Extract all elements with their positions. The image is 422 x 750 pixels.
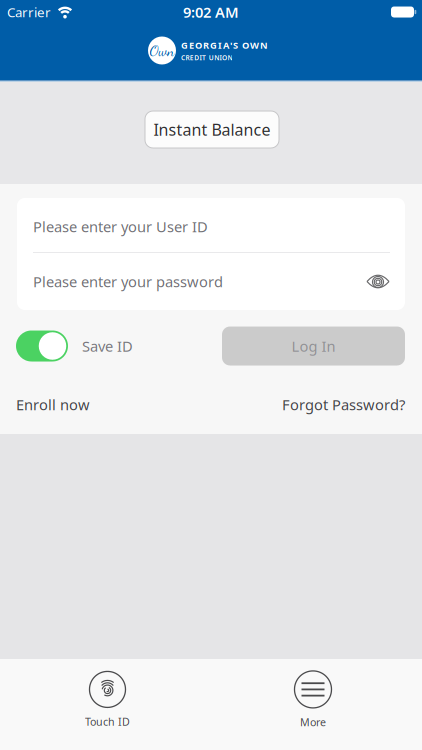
staticText: Save ID <box>82 336 133 356</box>
button[interactable]: Show password <box>366 273 390 289</box>
staticText: Please enter your password <box>33 272 223 291</box>
staticText: Own <box>149 42 174 59</box>
staticText: More <box>300 715 326 729</box>
staticText: Touch ID <box>85 714 130 729</box>
button[interactable]: Forgot Password? <box>282 395 405 414</box>
button[interactable]: Touch ID <box>0 671 211 729</box>
button[interactable]: More <box>211 671 422 729</box>
button[interactable]: Save ID <box>16 330 68 361</box>
staticText: Instant Balance <box>153 119 270 140</box>
staticText: Please enter your User ID <box>33 217 208 236</box>
button[interactable]: Enroll now <box>16 395 90 414</box>
staticText: Carrier <box>7 3 51 21</box>
staticText: Enroll now <box>16 395 90 414</box>
staticText: Forgot Password? <box>282 395 405 414</box>
button[interactable]: Instant Balance <box>145 111 279 148</box>
staticText: 9:02 AM <box>183 2 239 22</box>
button[interactable]: Log In <box>222 326 405 365</box>
staticText: CREDIT UNION <box>181 53 232 62</box>
staticText: GEORGIA'S OWN <box>181 39 268 51</box>
staticText: Log In <box>291 336 335 356</box>
